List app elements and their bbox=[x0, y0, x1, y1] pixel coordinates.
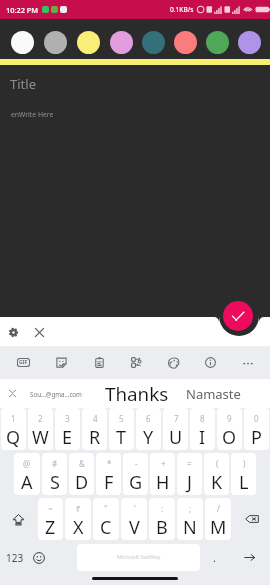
button[interactable]: Colour 0 bbox=[6, 31, 39, 54]
button[interactable]: ' bbox=[121, 498, 147, 540]
staticText: 1 bbox=[11, 413, 16, 424]
button[interactable]: Colour 5 bbox=[169, 31, 201, 54]
button[interactable]: Colour 4 bbox=[137, 31, 169, 54]
button[interactable]: ; bbox=[177, 498, 203, 540]
staticText: ) bbox=[243, 458, 246, 469]
button[interactable]: Colour 7 bbox=[233, 31, 265, 54]
button[interactable]: Info bbox=[192, 346, 229, 379]
button[interactable]: 123 bbox=[0, 544, 29, 571]
staticText: P bbox=[251, 425, 262, 450]
button[interactable]: Sticker bbox=[42, 346, 80, 379]
button[interactable]: Sou…@gma…com bbox=[24, 379, 88, 408]
staticText: D bbox=[75, 470, 89, 495]
staticText: GIF bbox=[19, 359, 28, 366]
staticText: C bbox=[100, 515, 112, 540]
button[interactable]: Colour 2 bbox=[72, 31, 105, 54]
staticText: N bbox=[183, 515, 197, 540]
button[interactable]: Shift bbox=[0, 498, 36, 540]
staticText: R bbox=[89, 425, 101, 450]
staticText: A bbox=[21, 470, 33, 495]
button[interactable]: Translate bbox=[118, 346, 155, 379]
staticText: M bbox=[210, 515, 227, 540]
button[interactable]: : bbox=[149, 498, 175, 540]
button[interactable]: . bbox=[200, 544, 228, 571]
staticText: F bbox=[104, 470, 114, 495]
staticText: 9 bbox=[227, 413, 232, 424]
button[interactable]: 4 bbox=[82, 408, 107, 450]
button[interactable]: 3 bbox=[55, 408, 80, 450]
button[interactable]: + bbox=[150, 453, 175, 495]
button[interactable]: 9 bbox=[217, 408, 242, 450]
button[interactable]: 8 bbox=[190, 408, 215, 450]
staticText: 7 bbox=[174, 413, 179, 424]
button[interactable]: Expand bbox=[0, 379, 24, 408]
staticText: ' bbox=[134, 503, 136, 514]
staticText: : bbox=[161, 503, 164, 514]
button[interactable]: Save note bbox=[223, 301, 253, 331]
button[interactable]: ( bbox=[204, 453, 229, 495]
staticText: T bbox=[116, 425, 127, 450]
staticText: - bbox=[135, 458, 138, 469]
staticText: I bbox=[199, 425, 206, 450]
button[interactable]: Backspace bbox=[233, 498, 270, 540]
staticText: X bbox=[73, 515, 84, 540]
button[interactable]: Colour 1 bbox=[39, 31, 72, 54]
staticText: K bbox=[211, 470, 223, 495]
button[interactable]: Settings bbox=[2, 321, 24, 343]
staticText: = bbox=[187, 458, 192, 469]
staticText: Q bbox=[6, 425, 21, 450]
button[interactable]: Namaste bbox=[186, 379, 241, 408]
button[interactable]: ₹ bbox=[65, 498, 91, 540]
staticText: Namaste bbox=[186, 385, 241, 403]
button[interactable]: Thanks bbox=[88, 379, 186, 408]
staticText: / bbox=[217, 503, 220, 514]
button[interactable]: @ bbox=[14, 453, 40, 495]
button[interactable]: More bbox=[229, 346, 266, 379]
staticText: & bbox=[79, 458, 85, 469]
button[interactable]: " bbox=[93, 498, 119, 540]
staticText: Sou…@gma…com bbox=[30, 390, 82, 398]
staticText: 6 bbox=[146, 413, 151, 424]
staticText: Thanks bbox=[105, 381, 169, 407]
staticText: 5 bbox=[119, 413, 124, 424]
staticText: 0 bbox=[254, 413, 259, 424]
button[interactable]: 5 bbox=[109, 408, 134, 450]
button[interactable]: Emoji bbox=[29, 544, 49, 571]
button[interactable]: Colour 3 bbox=[105, 31, 137, 54]
staticText: W bbox=[32, 425, 49, 450]
staticText: S bbox=[50, 470, 60, 495]
button[interactable]: GIF bbox=[4, 346, 42, 379]
staticText: * bbox=[107, 458, 112, 469]
staticText: B bbox=[156, 515, 168, 540]
button[interactable]: * bbox=[96, 453, 121, 495]
staticText: 0.1KB/s bbox=[170, 5, 194, 14]
button[interactable]: = bbox=[177, 453, 202, 495]
staticText: Y bbox=[143, 425, 154, 450]
button[interactable]: Microsoft SwiftKey bbox=[77, 544, 200, 571]
button[interactable]: ~ bbox=[38, 498, 63, 540]
staticText: ; bbox=[189, 503, 192, 514]
button[interactable]: Theme bbox=[155, 346, 192, 379]
button[interactable]: 1 bbox=[1, 408, 26, 450]
staticText: G bbox=[129, 470, 143, 495]
button[interactable]: - bbox=[123, 453, 148, 495]
staticText: Microsoft SwiftKey bbox=[117, 554, 161, 561]
button[interactable]: 2 bbox=[28, 408, 53, 450]
button[interactable]: / bbox=[205, 498, 231, 540]
staticText: ₹ bbox=[76, 503, 81, 514]
button[interactable]: Enter bbox=[228, 544, 270, 571]
staticText: ~ bbox=[48, 503, 53, 514]
button[interactable]: ) bbox=[231, 453, 256, 495]
button[interactable]: # bbox=[42, 453, 67, 495]
staticText: ( bbox=[216, 458, 219, 469]
button[interactable]: Close bbox=[28, 321, 50, 343]
staticText: V bbox=[129, 515, 140, 540]
button[interactable]: Clipboard bbox=[80, 346, 118, 379]
staticText: U bbox=[169, 425, 183, 450]
staticText: enWrite Here bbox=[11, 110, 54, 119]
button[interactable]: Colour 6 bbox=[201, 31, 233, 54]
button[interactable]: 6 bbox=[136, 408, 161, 450]
button[interactable]: 0 bbox=[244, 408, 269, 450]
button[interactable]: 7 bbox=[163, 408, 188, 450]
button[interactable]: & bbox=[69, 453, 94, 495]
